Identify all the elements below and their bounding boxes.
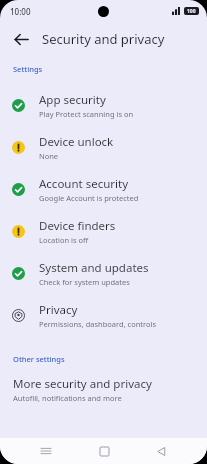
staticText: 10:00 [10,6,31,17]
staticText: Check for system updates [39,277,130,287]
staticText: Privacy [39,302,78,318]
staticText: Location is off [39,235,89,245]
staticText: Other settings [13,354,65,364]
button[interactable]: App security [0,84,207,126]
button[interactable]: Back [6,24,36,54]
staticText: Permissions, dashboard, controls [39,319,157,329]
staticText: Security and privacy [42,30,165,48]
button[interactable]: Device unlock [0,126,207,168]
staticText: Play Protect scanning is on [39,109,134,119]
staticText: App security [39,92,106,108]
staticText: System and updates [39,260,149,276]
staticText: More security and privacy [13,376,152,392]
button[interactable]: Recent apps [34,439,58,463]
staticText: 100 [187,8,196,15]
staticText: Device finders [39,218,116,234]
button[interactable]: Device finders [0,210,207,252]
staticText: Google Account is protected [39,193,139,203]
button[interactable]: Privacy [0,294,207,336]
staticText: Device unlock [39,134,114,150]
staticText: Autofill, notifications and more [13,393,122,403]
button[interactable]: System and updates [0,252,207,294]
button[interactable]: Back [149,439,173,463]
staticText: None [39,151,59,161]
button[interactable]: Account security [0,168,207,210]
staticText: Account security [39,176,129,192]
button[interactable]: More security and privacy [0,374,207,407]
button[interactable]: Home [92,439,116,463]
staticText: Settings [13,64,43,74]
